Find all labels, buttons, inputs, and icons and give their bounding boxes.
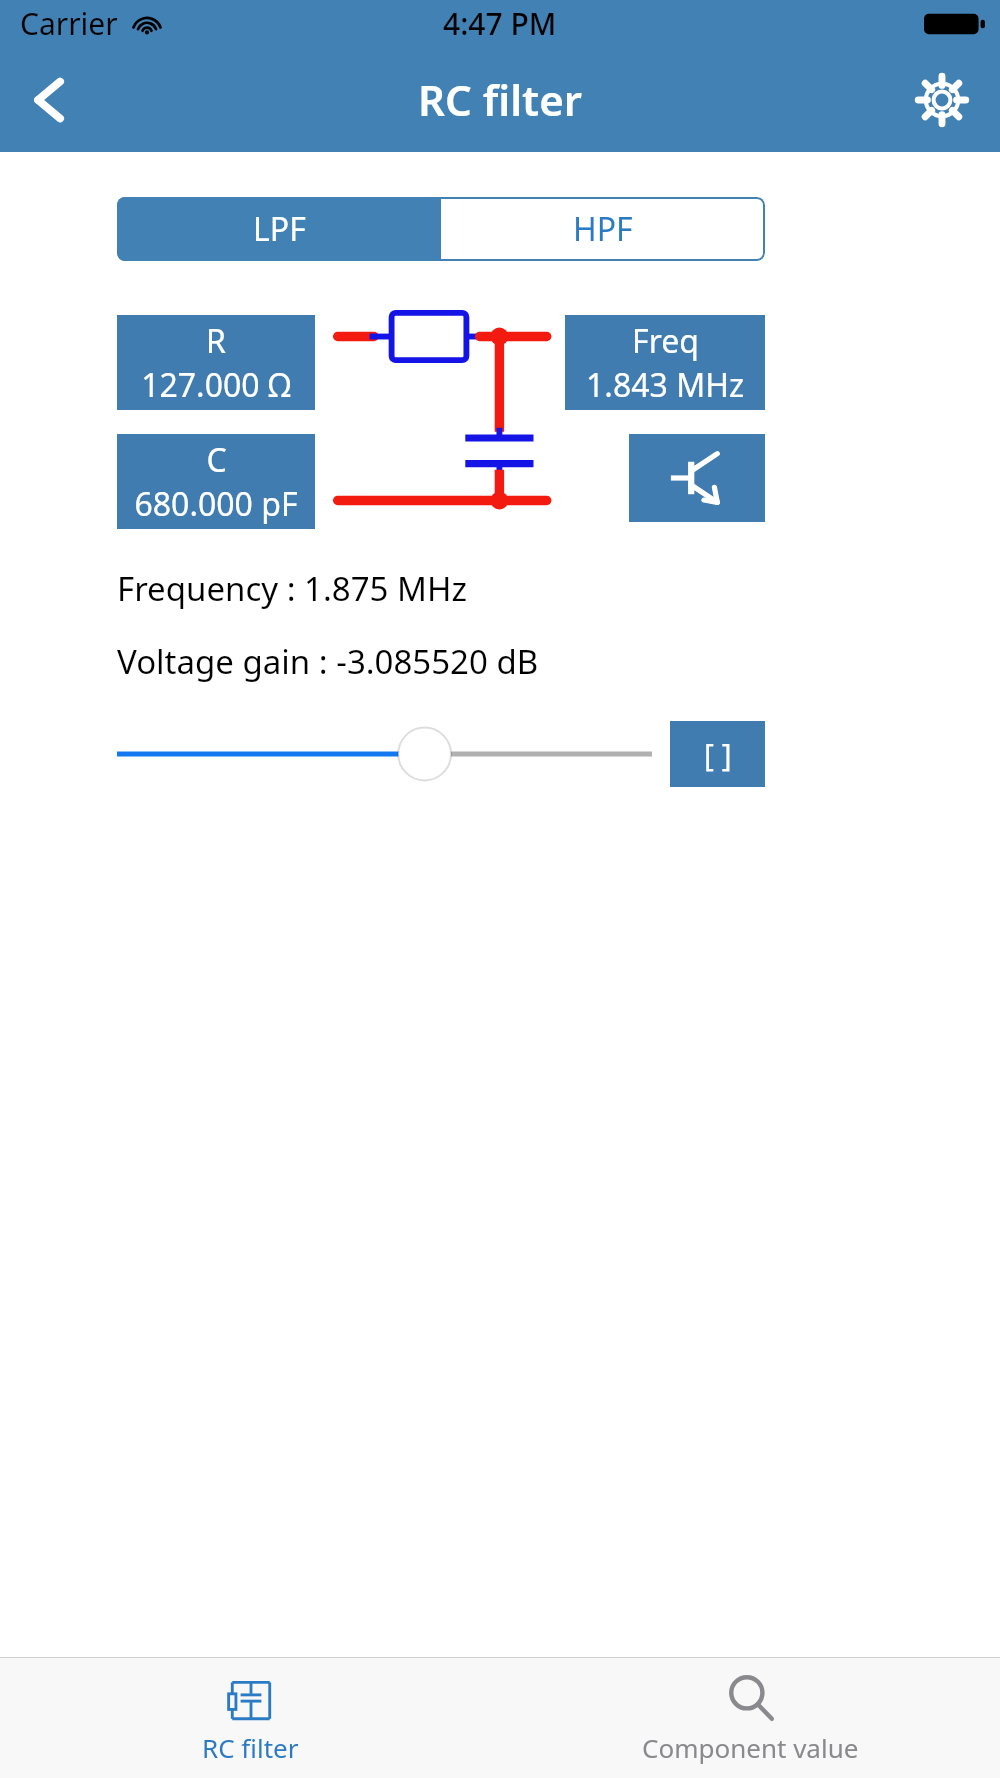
staticText: HPF: [573, 207, 633, 251]
staticText: 680.000 pF: [134, 482, 298, 526]
staticText: Freq: [632, 319, 699, 363]
button[interactable]: LPF: [117, 197, 441, 261]
staticText: 127.000 Ω: [141, 363, 291, 407]
button[interactable]: RC filter: [0, 1658, 500, 1778]
button[interactable]: Component value: [500, 1658, 1000, 1778]
staticText: [ ]: [704, 734, 732, 775]
button[interactable]: Transistor: [629, 434, 765, 522]
button[interactable]: R: [117, 315, 315, 410]
staticText: 1.843 MHz: [586, 363, 744, 407]
staticText: C: [206, 438, 227, 482]
button[interactable]: [ ]: [670, 721, 765, 787]
staticText: R: [206, 319, 226, 363]
staticText: Frequency : 1.875 MHz: [117, 566, 467, 611]
staticText: RC filter: [418, 71, 582, 128]
staticText: Voltage gain : -3.085520 dB: [117, 639, 539, 684]
button[interactable]: C: [117, 434, 315, 529]
button[interactable]: HPF: [441, 197, 765, 261]
staticText: Component value: [642, 1730, 859, 1765]
staticText: 4:47 PM: [443, 3, 557, 44]
button[interactable]: Settings: [902, 60, 982, 140]
staticText: Carrier: [20, 3, 118, 44]
button[interactable]: Freq: [565, 315, 765, 410]
button[interactable]: Back: [10, 60, 90, 140]
staticText: LPF: [253, 207, 306, 251]
button[interactable]: Value slider: [117, 724, 652, 784]
staticText: RC filter: [202, 1730, 299, 1765]
